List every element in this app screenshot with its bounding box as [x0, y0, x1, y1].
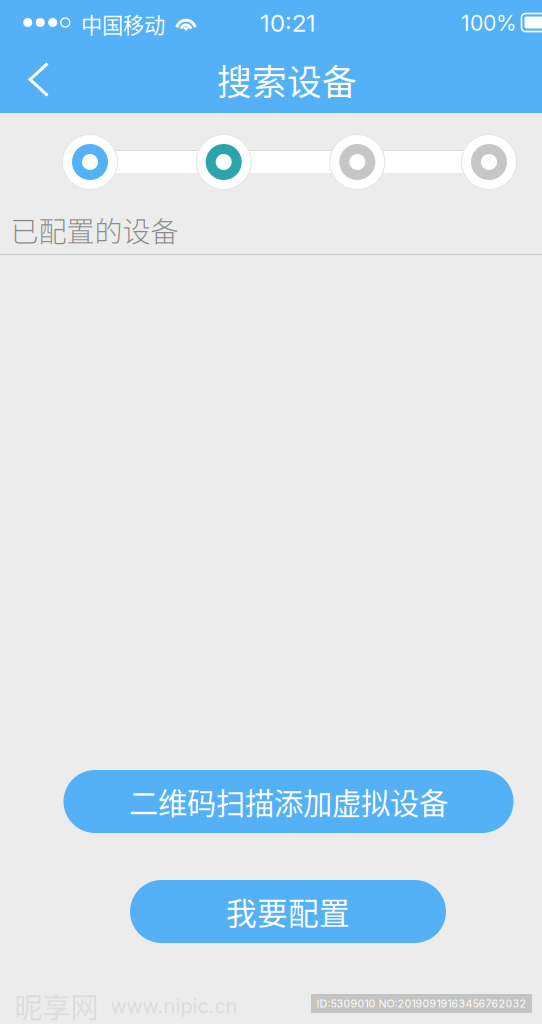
staticText: ID:5309010 NO:20190919163456762032	[316, 997, 526, 1010]
staticText: 中国移动	[81, 9, 165, 39]
button[interactable]: 二维码扫描添加虚拟设备	[63, 770, 513, 833]
staticText: 搜索设备	[217, 55, 357, 105]
staticText: 100%	[461, 10, 517, 36]
staticText: 昵享网	[14, 986, 98, 1024]
staticText: www.nipic.cn	[98, 994, 237, 1018]
staticText: 二维码扫描添加虚拟设备	[129, 780, 448, 823]
button[interactable]: 返回	[7, 46, 69, 113]
button[interactable]: 我要配置	[130, 880, 446, 943]
staticText: 10:21	[260, 8, 316, 37]
staticText: 已配置的设备	[10, 210, 178, 250]
staticText: 我要配置	[226, 889, 350, 934]
